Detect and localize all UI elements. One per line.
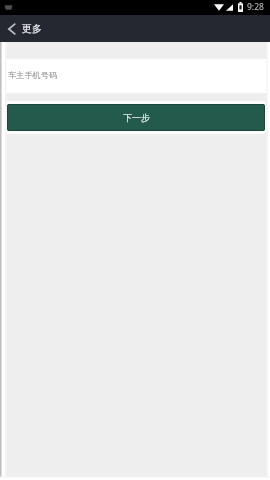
button[interactable]: 下一步 (7, 104, 265, 131)
other: Back (8, 23, 16, 35)
staticText: 下一步 (123, 112, 150, 123)
staticText: 9:28 (247, 1, 264, 13)
button[interactable]: 车主手机号码 (0, 59, 270, 93)
button[interactable]: Back (0, 18, 52, 39)
staticText: 车主手机号码 (8, 70, 58, 80)
staticText: 更多 (22, 22, 42, 35)
